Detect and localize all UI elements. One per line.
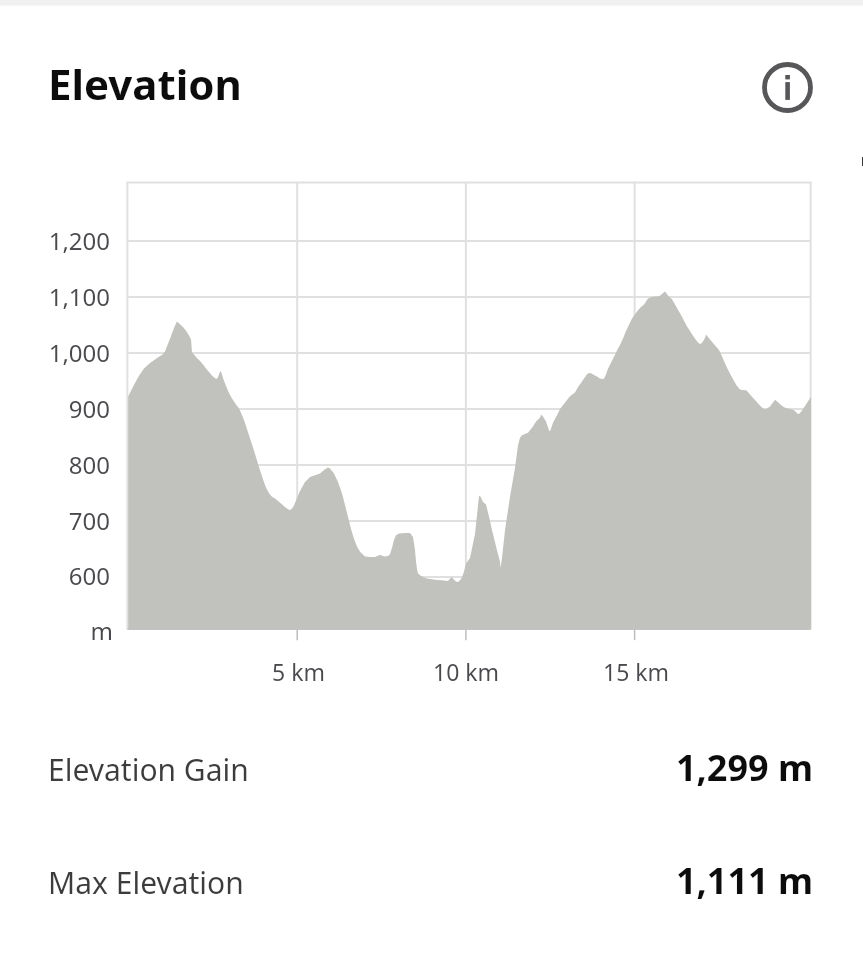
staticText: 1,100	[48, 280, 110, 313]
staticText: 10 km	[433, 656, 500, 687]
staticText: 1,200	[48, 224, 110, 257]
staticText: 5 km	[272, 656, 325, 687]
staticText: 900	[68, 392, 110, 425]
staticText: 1,000	[48, 336, 110, 369]
staticText: 600	[68, 559, 110, 592]
staticText: Elevation Gain	[48, 749, 249, 790]
staticText: m	[90, 614, 113, 647]
staticText: 700	[68, 504, 110, 537]
staticText: 1,299 m	[676, 743, 814, 792]
button[interactable]: Elevation Gain	[0, 740, 863, 798]
staticText: Elevation	[48, 55, 242, 112]
staticText: 1,111 m	[676, 856, 814, 905]
staticText: 15 km	[603, 656, 670, 687]
button[interactable]: Max Elevation	[0, 853, 863, 911]
button[interactable]: Elevation	[48, 55, 242, 112]
staticText: Max Elevation	[48, 862, 244, 903]
button[interactable]: Info	[755, 55, 820, 120]
staticText: 800	[68, 448, 110, 481]
